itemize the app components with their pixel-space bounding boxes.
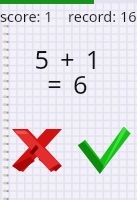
button[interactable]: Wrong answer <box>12 129 62 172</box>
staticText: record: 16 <box>68 6 137 26</box>
staticText: 5 + 1 <box>34 42 103 77</box>
staticText: score: 1 <box>0 6 53 26</box>
staticText: = 6 <box>47 67 90 102</box>
button[interactable]: Correct answer <box>76 126 131 174</box>
